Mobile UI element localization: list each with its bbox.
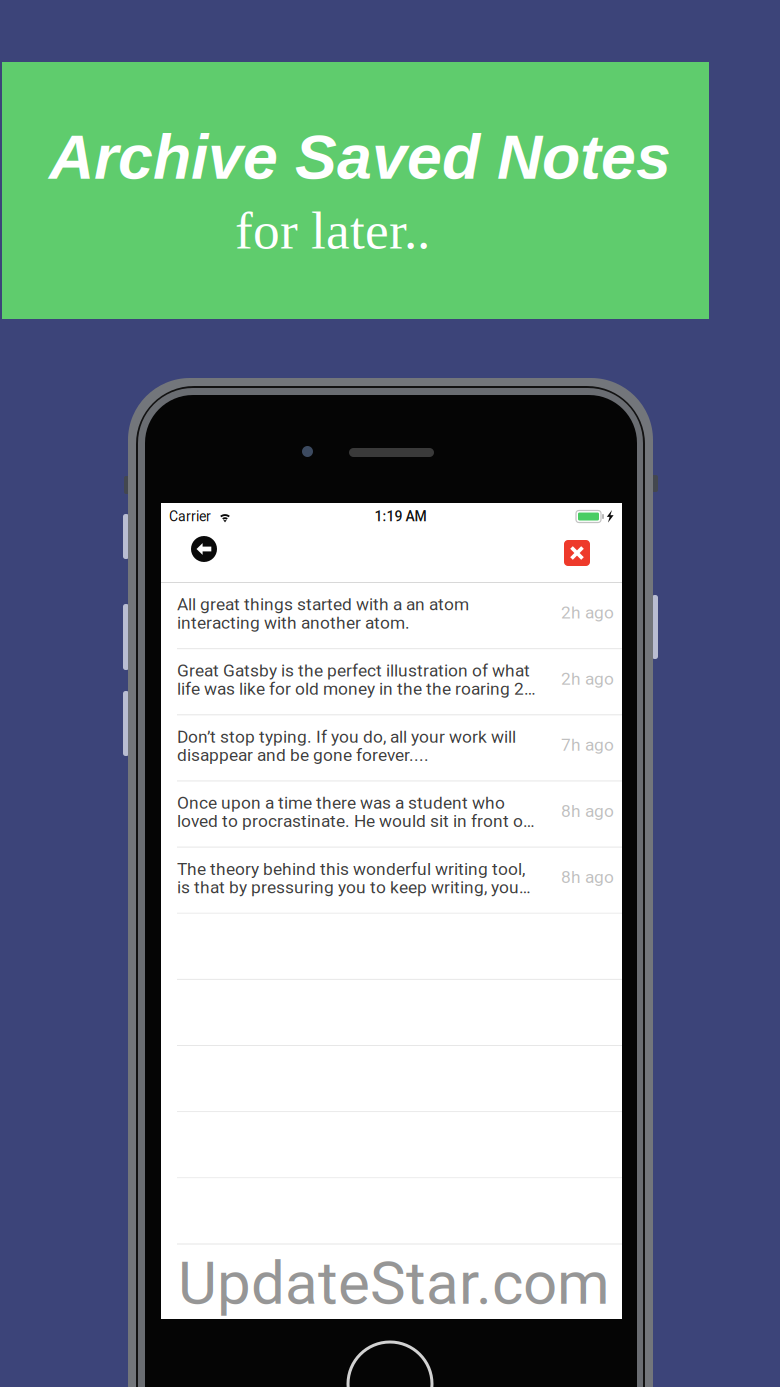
button[interactable]: Close [555,531,599,575]
staticText: life was like for old money in the the r… [177,679,536,699]
staticText: 2h ago [561,602,614,623]
staticText: loved to procrastinate. He would sit in … [177,811,535,831]
button[interactable]: All great things started with a an atom [161,583,622,648]
staticText: 8h ago [561,867,614,887]
staticText: 7h ago [561,735,614,755]
staticText: Don’t stop typing. If you do, all your w… [177,727,516,747]
staticText: is that by pressuring you to keep writin… [177,877,531,897]
button[interactable]: Great Gatsby is the perfect illustration… [161,649,622,714]
staticText: for later.. [235,201,430,260]
button[interactable]: Back [182,527,226,571]
staticText: interacting with another atom. [177,613,410,633]
button[interactable]: Once upon a time there was a student who [161,781,622,847]
button[interactable]: The theory behind this wonderful writing… [161,848,622,913]
staticText: 1:19 AM [374,508,426,525]
staticText: UpdateStar.com [178,1248,610,1318]
staticText: The theory behind this wonderful writing… [177,859,525,879]
staticText: Carrier [169,508,211,525]
button[interactable]: Don’t stop typing. If you do, all your w… [161,715,622,780]
staticText: All great things started with a an atom [177,594,469,615]
staticText: 2h ago [561,669,614,689]
staticText: Great Gatsby is the perfect illustration… [177,660,530,681]
staticText: Archive Saved Notes [49,122,671,192]
staticText: disappear and be gone forever.... [177,745,429,765]
staticText: Once upon a time there was a student who [177,793,505,813]
staticText: 8h ago [561,801,614,821]
